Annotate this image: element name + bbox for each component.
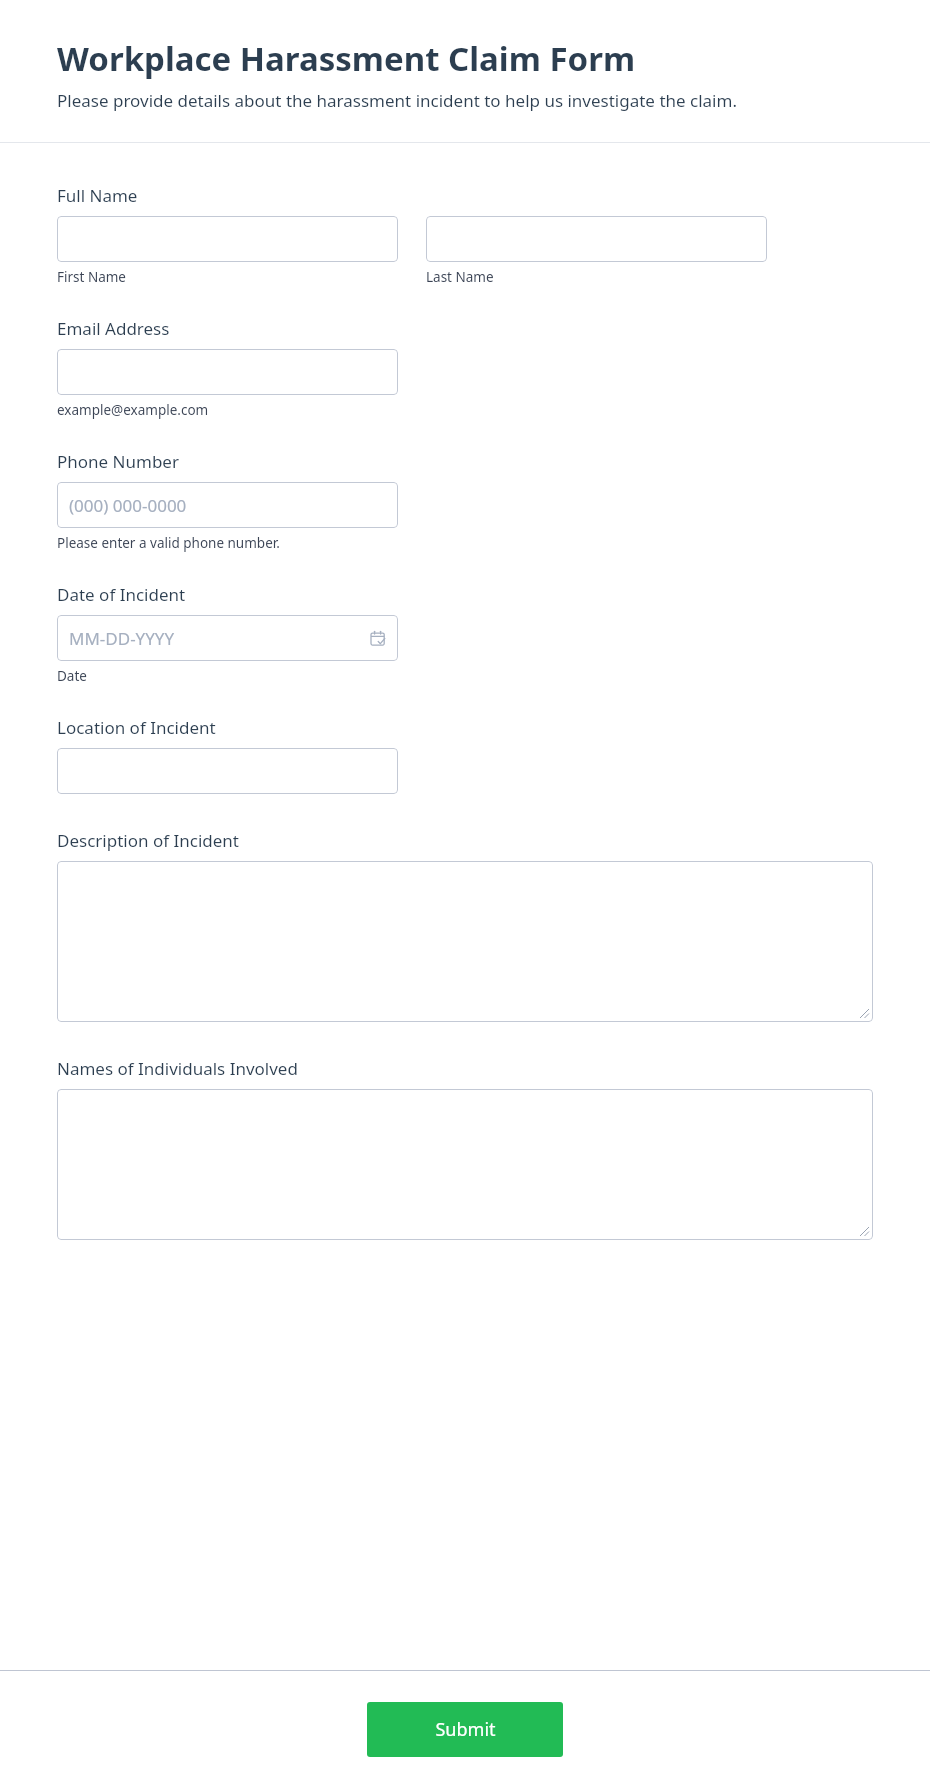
button[interactable]: [426, 216, 767, 262]
staticText: (000) 000-0000: [69, 494, 187, 517]
staticText: Please enter a valid phone number.: [57, 534, 280, 552]
staticText: Last Name: [426, 268, 494, 286]
staticText: Full Name: [57, 184, 138, 207]
staticText: First Name: [57, 268, 126, 286]
staticText: Submit: [435, 1717, 496, 1742]
button[interactable]: [57, 748, 398, 794]
staticText: Email Address: [57, 317, 170, 340]
button[interactable]: Submit: [367, 1702, 563, 1757]
other: Pick date: [371, 631, 386, 646]
staticText: Workplace Harassment Claim Form: [57, 36, 636, 81]
staticText: Please provide details about the harassm…: [57, 89, 737, 112]
staticText: Phone Number: [57, 450, 179, 473]
staticText: Description of Incident: [57, 829, 239, 852]
staticText: Location of Incident: [57, 716, 216, 739]
staticText: example@example.com: [57, 401, 209, 419]
button[interactable]: MM-DD-YYYY: [57, 615, 398, 661]
button[interactable]: [57, 216, 398, 262]
staticText: Date: [57, 667, 87, 685]
button[interactable]: [57, 1089, 873, 1240]
staticText: Names of Individuals Involved: [57, 1057, 298, 1080]
button[interactable]: [57, 349, 398, 395]
staticText: MM-DD-YYYY: [69, 627, 175, 650]
button[interactable]: [57, 861, 873, 1022]
staticText: Date of Incident: [57, 583, 186, 606]
button[interactable]: (000) 000-0000: [57, 482, 398, 528]
